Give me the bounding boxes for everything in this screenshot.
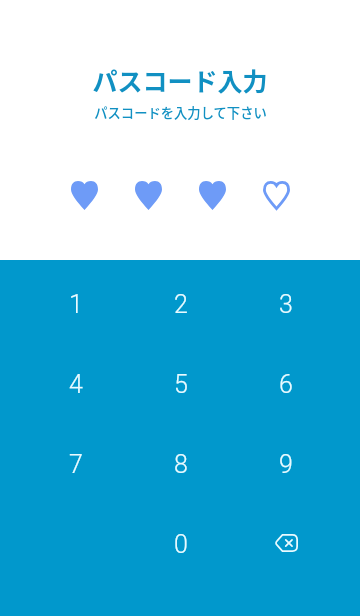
button[interactable]: 2	[128, 264, 233, 344]
button[interactable]: 7	[23, 424, 128, 504]
staticText: 0	[174, 530, 188, 559]
staticText: 3	[279, 290, 293, 319]
button[interactable]: 1	[23, 264, 128, 344]
button[interactable]: 0	[128, 504, 233, 584]
staticText: 4	[69, 370, 83, 399]
staticText: パスコードを入力して下さい	[94, 103, 267, 122]
other: Backspace	[274, 534, 298, 552]
button[interactable]: Backspace	[233, 504, 338, 584]
staticText: パスコード入力	[92, 62, 268, 98]
button[interactable]: 9	[233, 424, 338, 504]
staticText: 5	[174, 370, 188, 399]
staticText: 7	[69, 450, 83, 479]
button[interactable]: 6	[233, 344, 338, 424]
staticText: 2	[174, 290, 188, 319]
button[interactable]: 5	[128, 344, 233, 424]
staticText: 1	[69, 290, 83, 319]
staticText: 6	[279, 370, 293, 399]
button[interactable]: 4	[23, 344, 128, 424]
staticText: 8	[174, 450, 188, 479]
staticText: 9	[279, 450, 293, 479]
button[interactable]: 3	[233, 264, 338, 344]
button[interactable]: 8	[128, 424, 233, 504]
